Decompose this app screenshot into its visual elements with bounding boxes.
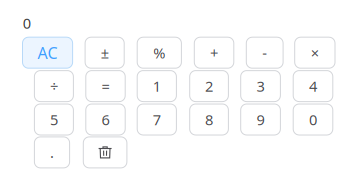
button[interactable]: = xyxy=(86,71,125,102)
staticText: . xyxy=(50,143,54,162)
button[interactable]: - xyxy=(246,37,283,68)
staticText: 0 xyxy=(23,13,31,33)
button[interactable]: 4 xyxy=(293,71,333,102)
staticText: ÷ xyxy=(50,76,58,96)
staticText: % xyxy=(153,43,165,62)
staticText: 7 xyxy=(153,110,161,129)
button[interactable]: 5 xyxy=(34,104,73,135)
staticText: = xyxy=(101,76,109,96)
staticText: 8 xyxy=(205,110,213,129)
button[interactable]: % xyxy=(137,37,181,68)
button[interactable]: 2 xyxy=(190,71,228,102)
button[interactable]: 3 xyxy=(241,71,280,102)
button[interactable]: 7 xyxy=(137,104,176,135)
staticText: ± xyxy=(101,43,109,62)
staticText: 1 xyxy=(153,76,161,96)
button[interactable]: 1 xyxy=(137,71,176,102)
staticText: 2 xyxy=(205,76,213,96)
button[interactable]: 6 xyxy=(86,104,125,135)
button[interactable]: + xyxy=(194,37,234,68)
staticText: AC xyxy=(37,42,57,63)
button[interactable]: 9 xyxy=(241,104,280,135)
button[interactable]: ÷ xyxy=(34,71,73,102)
staticText: + xyxy=(210,43,218,62)
button[interactable]: . xyxy=(34,137,70,168)
button[interactable]: AC xyxy=(22,37,73,68)
button[interactable]: ± xyxy=(85,37,124,68)
staticText: - xyxy=(262,43,267,62)
button[interactable]: 8 xyxy=(190,104,228,135)
button[interactable]: × xyxy=(295,37,335,68)
staticText: × xyxy=(311,43,319,62)
staticText: 0 xyxy=(309,110,317,129)
staticText: 5 xyxy=(50,110,58,129)
staticText: 6 xyxy=(101,110,109,129)
button[interactable]: Delete xyxy=(83,137,127,168)
staticText: 3 xyxy=(257,76,265,96)
staticText: 4 xyxy=(309,76,317,96)
button[interactable]: 0 xyxy=(293,104,333,135)
staticText: 9 xyxy=(257,110,265,129)
